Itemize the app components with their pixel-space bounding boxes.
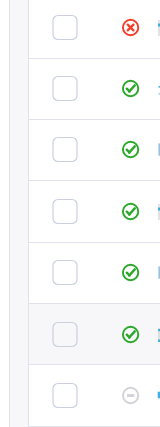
button[interactable]: List row 5: [29, 243, 160, 303]
button[interactable]: Status active: [120, 201, 142, 223]
button[interactable]: Select row 3: [53, 138, 77, 162]
button[interactable]: Status error: [120, 17, 142, 39]
button[interactable]: Select row 6: [53, 323, 77, 347]
button[interactable]: List row 3: [29, 120, 160, 180]
button[interactable]: Select row 7: [53, 384, 77, 408]
button[interactable]: Select row 4: [53, 200, 77, 224]
button[interactable]: Select row 1: [53, 16, 77, 40]
button[interactable]: List row 1: [29, 0, 160, 58]
button[interactable]: Status active: [120, 139, 142, 161]
button[interactable]: List row 2: [29, 59, 160, 119]
button[interactable]: Status disabled: [120, 385, 142, 407]
button[interactable]: Select row 5: [53, 261, 77, 285]
button[interactable]: List row 6: [29, 304, 160, 364]
button[interactable]: List row 4: [29, 181, 160, 242]
button[interactable]: Status active: [120, 262, 142, 284]
button[interactable]: List row 7: [29, 365, 160, 426]
button[interactable]: Select row 2: [53, 77, 77, 101]
button[interactable]: Status active: [120, 324, 142, 346]
button[interactable]: Status active: [120, 78, 142, 100]
